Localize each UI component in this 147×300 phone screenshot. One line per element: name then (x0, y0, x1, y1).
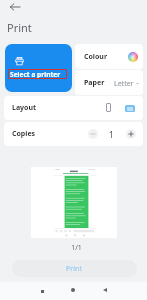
button[interactable]: Select a printer (5, 44, 72, 92)
button[interactable]: Increase copies (126, 129, 136, 139)
button[interactable]: Layout (4, 96, 143, 120)
button[interactable]: Decrease copies (88, 129, 98, 139)
staticText: Colour (84, 52, 108, 62)
staticText: 1 (109, 129, 114, 140)
staticText: Paper (84, 78, 105, 88)
button[interactable]: Portrait (106, 103, 111, 112)
staticText: Copies (12, 129, 36, 139)
staticText: Select a printer (10, 70, 61, 79)
button[interactable]: Colour (75, 44, 143, 69)
staticText: 1/1 (3, 243, 147, 253)
staticText: Print (66, 264, 83, 274)
button[interactable]: Recents (36, 285, 48, 297)
button[interactable]: Back (7, 1, 23, 13)
button[interactable]: Back (99, 284, 111, 296)
button[interactable]: Print (12, 260, 137, 277)
staticText: Layout (12, 103, 37, 113)
staticText: Print (7, 20, 32, 35)
staticText: Letter (114, 79, 134, 89)
button[interactable]: Landscape (125, 105, 135, 112)
button[interactable]: Home (67, 284, 79, 296)
button[interactable]: Paper (75, 70, 143, 95)
